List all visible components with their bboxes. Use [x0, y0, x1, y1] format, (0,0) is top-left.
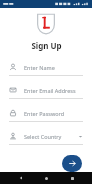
- staticText: Enter Name: [24, 64, 83, 71]
- button[interactable]: Enter Name: [9, 61, 83, 76]
- button[interactable]: Recents: [67, 173, 77, 183]
- button[interactable]: Select Country: [9, 130, 83, 145]
- staticText: Enter Email Address: [24, 87, 83, 94]
- staticText: Select Country: [24, 133, 78, 140]
- button[interactable]: Back: [16, 173, 26, 183]
- staticText: Sign Up: [31, 40, 62, 51]
- staticText: Enter Password: [24, 110, 83, 117]
- button[interactable]: Enter Password: [9, 107, 83, 122]
- button[interactable]: Home: [41, 173, 51, 183]
- button[interactable]: Submit sign up: [62, 155, 82, 172]
- button[interactable]: Enter Email Address: [9, 84, 83, 99]
